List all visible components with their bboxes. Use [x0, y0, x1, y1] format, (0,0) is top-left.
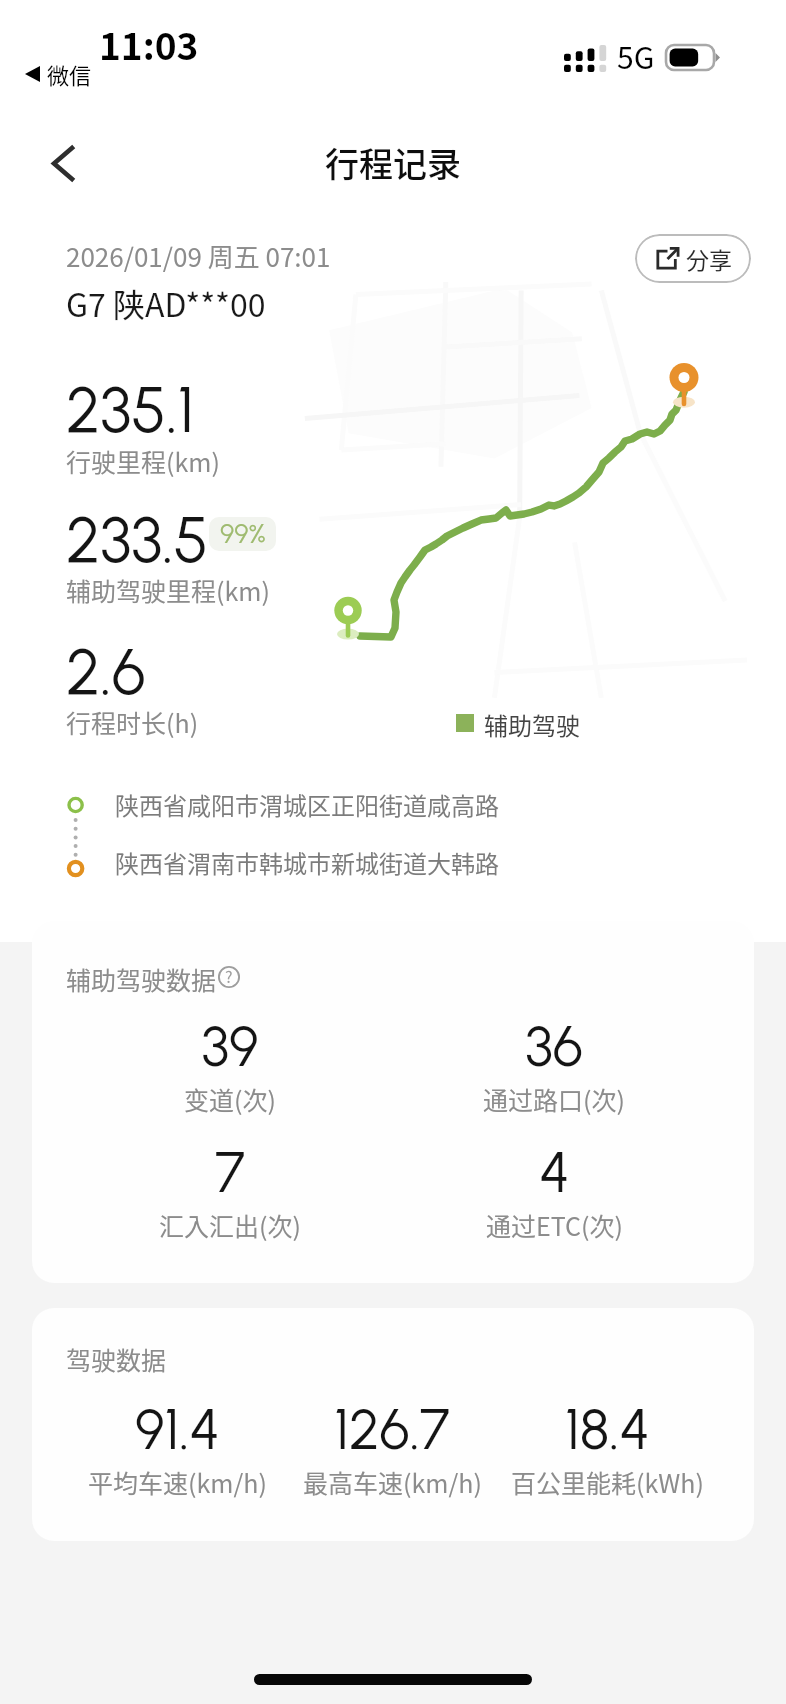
staticText: 2.6: [66, 634, 146, 710]
staticText: 4: [539, 1139, 570, 1206]
staticText: 通过ETC(次): [486, 1207, 623, 1243]
staticText: 微信: [47, 58, 92, 90]
staticText: 辅助驾驶数据: [66, 961, 217, 997]
staticText: 驾驶数据: [66, 1341, 167, 1377]
staticText: 最高车速(km/h): [303, 1464, 482, 1500]
staticText: 5G: [617, 34, 655, 77]
staticText: 行程时长(h): [66, 704, 199, 740]
staticText: 7: [215, 1139, 245, 1206]
button[interactable]: 分享: [635, 234, 751, 283]
staticText: 233.5: [66, 502, 209, 578]
staticText: 百公里能耗(kWh): [511, 1464, 704, 1500]
staticText: 行驶里程(km): [66, 443, 220, 479]
staticText: 91.4: [135, 1396, 220, 1463]
staticText: 36: [525, 1013, 583, 1080]
staticText: 辅助驾驶: [484, 707, 580, 742]
button[interactable]: Info: [217, 965, 240, 988]
staticText: 辅助驾驶里程(km): [66, 572, 270, 608]
button[interactable]: Back: [32, 132, 94, 194]
staticText: 行程记录: [325, 138, 461, 187]
staticText: 11:03: [99, 17, 199, 71]
staticText: 分享: [686, 242, 732, 275]
staticText: 汇入汇出(次): [159, 1207, 301, 1243]
staticText: 39: [201, 1013, 259, 1080]
staticText: 2026/01/09 周五 07:01: [66, 237, 331, 275]
staticText: 陕西省咸阳市渭城区正阳街道咸高路: [115, 787, 499, 822]
staticText: ?: [225, 964, 233, 987]
staticText: 通过路口(次): [483, 1081, 625, 1117]
staticText: 陕西省渭南市韩城市新城街道大韩路: [115, 845, 499, 880]
staticText: 18.4: [565, 1396, 650, 1463]
staticText: 235.1: [66, 372, 195, 448]
staticText: 变道(次): [184, 1081, 276, 1117]
staticText: 平均车速(km/h): [88, 1464, 267, 1500]
staticText: 99%: [220, 517, 266, 549]
staticText: 126.7: [334, 1396, 450, 1463]
staticText: G7 陕AD***00: [66, 280, 266, 326]
